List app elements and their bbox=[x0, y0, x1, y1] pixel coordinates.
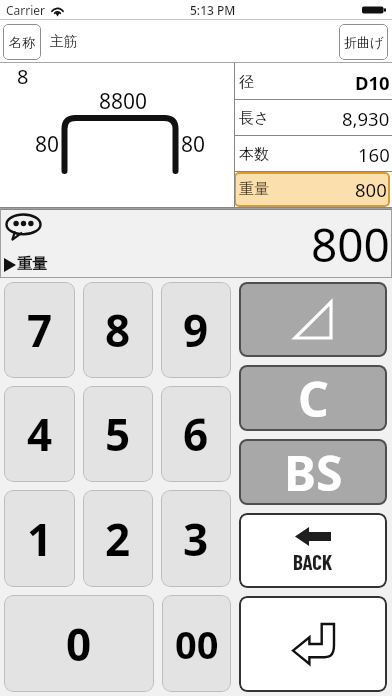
staticText: 800 bbox=[355, 177, 387, 202]
staticText: 2 bbox=[105, 509, 131, 569]
staticText: 8 bbox=[17, 63, 29, 90]
button[interactable]: 00 bbox=[162, 595, 231, 692]
button[interactable]: 0 bbox=[4, 595, 154, 692]
staticText: 6 bbox=[183, 404, 209, 464]
button[interactable]: 4 bbox=[4, 386, 75, 482]
staticText: C bbox=[298, 366, 329, 431]
button[interactable]: 9 bbox=[161, 282, 231, 378]
button[interactable]: 6 bbox=[161, 386, 231, 482]
staticText: 7 bbox=[27, 300, 53, 360]
button[interactable]: 折曲げ bbox=[339, 24, 388, 60]
staticText: 本数 bbox=[239, 145, 269, 164]
staticText: 800 bbox=[311, 213, 390, 276]
button[interactable]: 本数 bbox=[234, 136, 392, 172]
staticText: 8,930 bbox=[342, 106, 390, 131]
staticText: 重量 bbox=[239, 180, 269, 199]
button[interactable]: 名称 bbox=[3, 24, 41, 60]
staticText: 160 bbox=[358, 142, 390, 167]
button[interactable]: 3 bbox=[161, 490, 231, 587]
staticText: 長さ bbox=[239, 109, 270, 128]
staticText: 80 bbox=[35, 130, 60, 159]
button[interactable]: 重量 bbox=[234, 172, 390, 207]
button[interactable]: 2 bbox=[83, 490, 153, 587]
button[interactable]: 8 bbox=[83, 282, 153, 378]
button[interactable]: key bbox=[239, 439, 387, 505]
button[interactable]: key bbox=[239, 513, 387, 588]
button[interactable]: key bbox=[239, 365, 387, 431]
button[interactable]: key bbox=[239, 282, 387, 357]
button[interactable]: 5 bbox=[83, 386, 153, 482]
staticText: 0 bbox=[66, 614, 92, 674]
staticText: 9 bbox=[183, 300, 209, 360]
staticText: 径 bbox=[239, 73, 254, 92]
staticText: 5:13 PM bbox=[190, 2, 236, 18]
staticText: Carrier bbox=[6, 2, 46, 18]
button[interactable]: key bbox=[239, 596, 387, 692]
staticText: 8 bbox=[105, 300, 131, 360]
staticText: 1 bbox=[27, 509, 53, 569]
staticText: 名称 bbox=[9, 34, 35, 50]
staticText: 80 bbox=[181, 130, 206, 159]
staticText: 00 bbox=[175, 618, 219, 670]
staticText: BS bbox=[284, 440, 343, 505]
staticText: BACK bbox=[293, 549, 333, 574]
button[interactable]: 1 bbox=[4, 490, 75, 587]
staticText: 4 bbox=[27, 404, 53, 464]
staticText: 8800 bbox=[99, 87, 148, 116]
staticText: 主筋 bbox=[50, 33, 78, 51]
button[interactable]: 7 bbox=[4, 282, 75, 378]
staticText: 折曲げ bbox=[344, 34, 384, 50]
staticText: 重量 bbox=[17, 255, 47, 274]
staticText: D10 bbox=[355, 70, 390, 95]
button[interactable]: 径 bbox=[234, 64, 392, 100]
button[interactable]: 長さ bbox=[234, 100, 392, 136]
staticText: 3 bbox=[183, 509, 209, 569]
staticText: 5 bbox=[105, 404, 131, 464]
